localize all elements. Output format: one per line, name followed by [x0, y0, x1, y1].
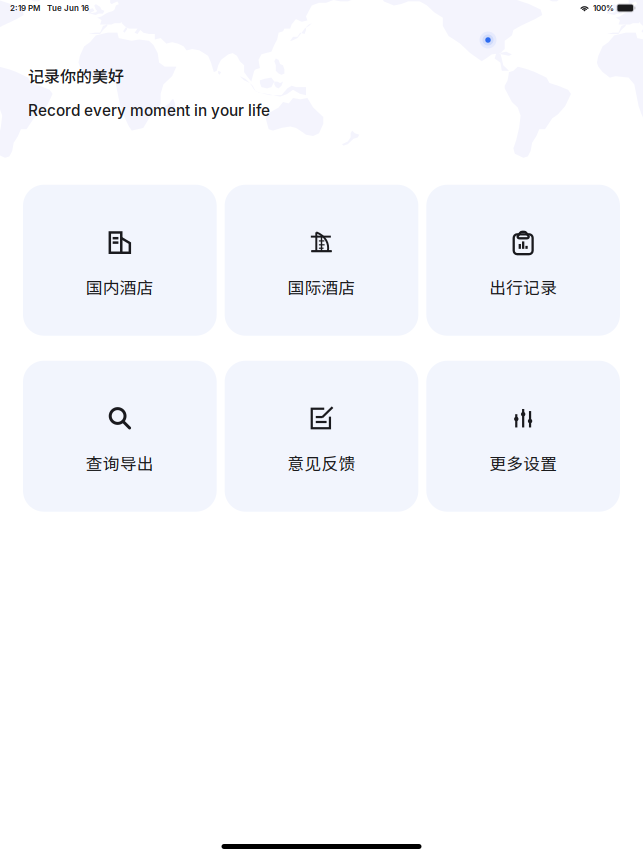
staticText: 意见反馈 — [287, 451, 355, 475]
button[interactable]: 查询导出 — [23, 361, 217, 512]
staticText: Record every moment in your life — [28, 101, 270, 120]
staticText: 国际酒店 — [287, 275, 355, 299]
staticText: 100% — [593, 3, 614, 13]
staticText: 记录你的美好 — [28, 64, 124, 87]
button[interactable]: 意见反馈 — [225, 361, 418, 512]
staticText: 2:19 PM — [10, 3, 40, 13]
button[interactable]: 更多设置 — [426, 361, 620, 512]
button[interactable]: 国内酒店 — [23, 185, 217, 336]
staticText: 国内酒店 — [86, 275, 154, 299]
staticText: 更多设置 — [489, 451, 557, 475]
staticText: 出行记录 — [489, 275, 557, 299]
button[interactable]: 出行记录 — [426, 185, 620, 336]
staticText: 查询导出 — [86, 451, 154, 475]
button[interactable]: 国际酒店 — [225, 185, 418, 336]
staticText: Tue Jun 16 — [47, 3, 89, 13]
